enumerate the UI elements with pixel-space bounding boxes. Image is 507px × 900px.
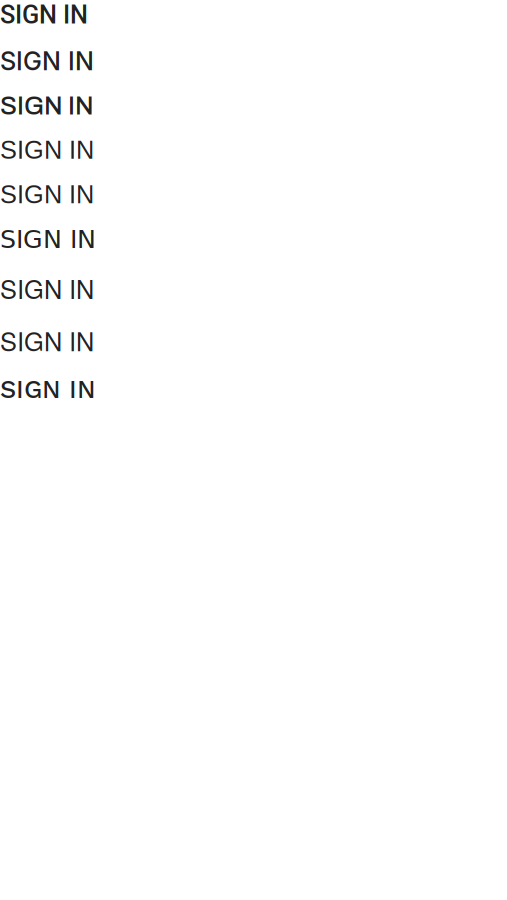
staticText: SIGN IN <box>0 270 94 306</box>
staticText: SIGN IN <box>0 136 94 164</box>
staticText: SIGN IN <box>0 322 94 359</box>
staticText: SIGN IN <box>0 374 96 404</box>
staticText: SIGN IN <box>0 180 94 208</box>
staticText: SIGN IN <box>0 92 94 120</box>
staticText: SIGN IN <box>0 224 96 254</box>
staticText: SIGN IN <box>0 46 94 76</box>
staticText: SIGN IN <box>0 0 88 30</box>
